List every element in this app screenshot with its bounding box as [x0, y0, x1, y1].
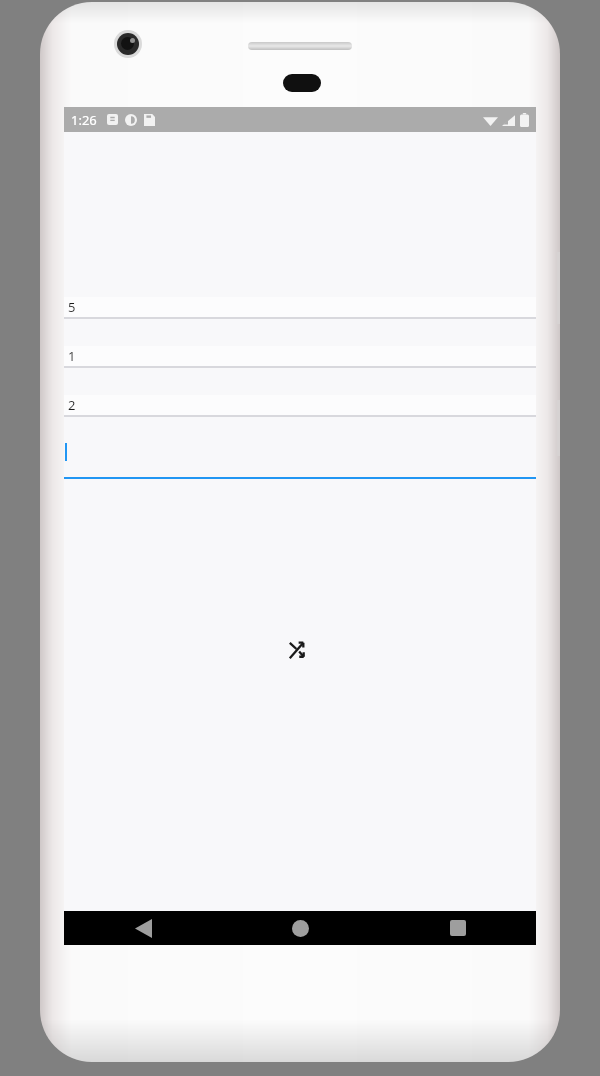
staticText: 2 [68, 396, 76, 414]
button[interactable]: Home [222, 911, 379, 945]
staticText: 5 [68, 298, 76, 316]
button[interactable]: 2 [64, 395, 536, 417]
button[interactable]: Shuffle [288, 640, 308, 660]
staticText: 1 [68, 347, 76, 365]
button[interactable]: Back [64, 911, 222, 945]
button[interactable]: 1 [64, 346, 536, 368]
staticText: 1:26 [71, 111, 97, 129]
button[interactable]: 5 [64, 297, 536, 319]
button[interactable] [64, 439, 536, 479]
button[interactable]: Recent apps [379, 911, 536, 945]
